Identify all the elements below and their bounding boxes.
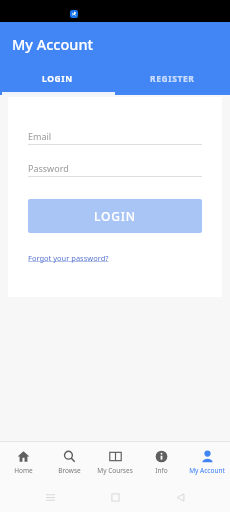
button[interactable]: Forgot your password?: [28, 253, 109, 263]
button[interactable]: Password: [28, 159, 202, 177]
staticText: My Account: [12, 34, 94, 54]
button[interactable]: My Account: [184, 442, 230, 482]
staticText: LOGIN: [94, 208, 136, 224]
staticText: Home: [14, 466, 33, 475]
button[interactable]: Email: [28, 127, 202, 145]
button[interactable]: Home: [100, 482, 130, 512]
staticText: REGISTER: [150, 73, 195, 85]
button[interactable]: LOGIN: [28, 199, 202, 233]
button[interactable]: Home: [0, 442, 46, 482]
staticText: My Account: [189, 466, 225, 475]
button[interactable]: My Courses: [92, 442, 138, 482]
staticText: Browse: [58, 466, 81, 475]
button[interactable]: Browse: [46, 442, 92, 482]
button[interactable]: Recent apps: [35, 482, 65, 512]
staticText: Email: [28, 130, 52, 142]
button[interactable]: REGISTER: [115, 66, 230, 92]
staticText: Password: [28, 162, 69, 174]
button[interactable]: Back: [165, 482, 195, 512]
button[interactable]: Info: [138, 442, 184, 482]
staticText: My Courses: [97, 466, 133, 475]
staticText: Info: [155, 466, 168, 475]
staticText: Forgot your password?: [28, 253, 109, 263]
staticText: LOGIN: [42, 73, 73, 85]
button[interactable]: LOGIN: [0, 66, 115, 92]
